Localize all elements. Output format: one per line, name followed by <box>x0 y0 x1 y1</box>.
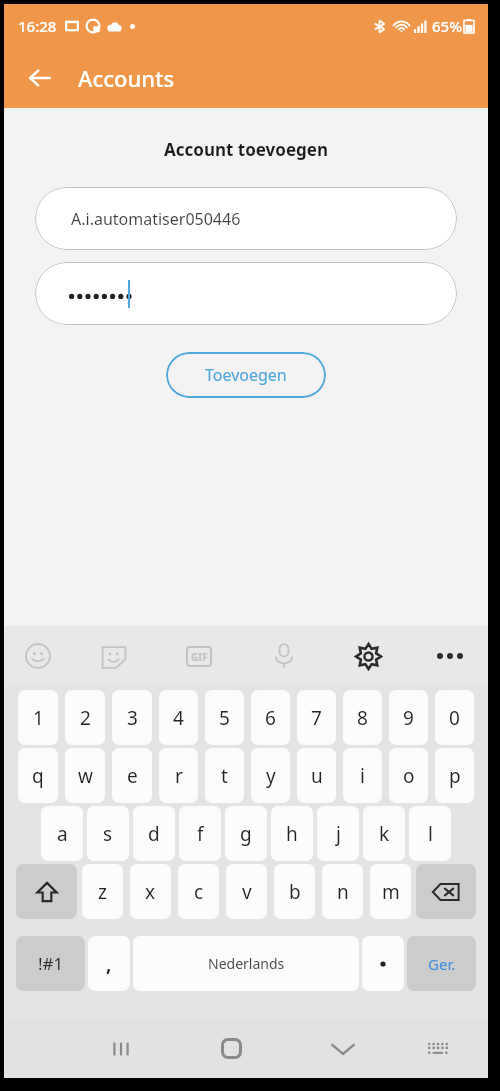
button[interactable]: A.i.automatiser050446 <box>35 187 457 250</box>
button[interactable]: Stickers <box>71 626 156 686</box>
button[interactable]: l <box>409 806 451 861</box>
staticText: w <box>78 763 93 789</box>
button[interactable] <box>362 936 404 991</box>
staticText: Ger. <box>428 954 456 974</box>
button[interactable]: c <box>178 864 219 919</box>
button[interactable]: Recent apps <box>65 1019 176 1078</box>
staticText: 65% <box>432 16 462 36</box>
button[interactable]: v <box>226 864 267 919</box>
button[interactable]: 3 <box>112 690 152 745</box>
button[interactable]: w <box>65 748 105 803</box>
button[interactable]: , <box>88 936 130 991</box>
staticText: 0 <box>449 705 460 731</box>
button[interactable]: 8 <box>343 690 382 745</box>
staticText: j <box>336 821 341 847</box>
button[interactable]: u <box>297 748 336 803</box>
staticText: 8 <box>357 705 368 731</box>
button[interactable]: 6 <box>251 690 290 745</box>
button[interactable]: Hide keyboard <box>287 1019 398 1078</box>
staticText: n <box>337 879 349 905</box>
staticText: h <box>286 821 298 847</box>
button[interactable]: m <box>370 864 411 919</box>
staticText: q <box>32 763 44 789</box>
staticText: y <box>266 763 276 789</box>
staticText: c <box>194 879 204 905</box>
staticText: 7 <box>311 705 322 731</box>
button[interactable]: 1 <box>18 690 58 745</box>
button[interactable]: Nederlands <box>133 936 359 991</box>
button[interactable]: GIF <box>156 626 241 686</box>
staticText: 6 <box>265 705 276 731</box>
button[interactable]: x <box>130 864 171 919</box>
button[interactable]: f <box>179 806 221 861</box>
staticText: t <box>221 763 228 789</box>
staticText: k <box>379 821 390 847</box>
button[interactable]: Backspace <box>416 864 476 919</box>
staticText: , <box>106 951 112 977</box>
staticText: x <box>145 879 156 905</box>
staticText: a <box>57 821 68 847</box>
button[interactable]: 2 <box>65 690 105 745</box>
button[interactable]: Home <box>176 1019 287 1078</box>
staticText: p <box>449 763 461 789</box>
button[interactable]: a <box>41 806 83 861</box>
button[interactable]: k <box>363 806 405 861</box>
button[interactable]: Voice input <box>241 626 326 686</box>
staticText: GIF <box>191 650 208 664</box>
staticText: Nederlands <box>208 954 285 973</box>
button[interactable]: Emoji <box>4 626 71 686</box>
button[interactable]: Toevoegen <box>166 352 326 398</box>
button[interactable]: r <box>159 748 198 803</box>
button[interactable]: More options <box>411 626 488 686</box>
staticText: i <box>360 763 365 789</box>
staticText: g <box>240 821 252 847</box>
staticText: Account toevoegen <box>4 138 488 161</box>
button[interactable] <box>35 262 457 325</box>
button[interactable]: i <box>343 748 382 803</box>
staticText: Accounts <box>78 63 175 93</box>
button[interactable]: t <box>205 748 244 803</box>
button[interactable]: j <box>317 806 359 861</box>
button[interactable]: b <box>274 864 315 919</box>
button[interactable]: s <box>87 806 129 861</box>
staticText: 5 <box>219 705 230 731</box>
staticText: f <box>197 821 204 847</box>
staticText: s <box>103 821 113 847</box>
staticText: 4 <box>173 705 184 731</box>
staticText: !#1 <box>38 952 64 975</box>
button[interactable]: p <box>435 748 474 803</box>
staticText: d <box>148 821 160 847</box>
staticText: 2 <box>80 705 91 731</box>
button[interactable]: Ger. <box>407 936 476 991</box>
button[interactable]: Keyboard settings <box>326 626 411 686</box>
staticText: 16:28 <box>18 16 57 36</box>
button[interactable]: 9 <box>389 690 428 745</box>
staticText: A.i.automatiser050446 <box>71 208 241 230</box>
button[interactable]: !#1 <box>16 936 85 991</box>
button[interactable]: y <box>251 748 290 803</box>
button[interactable]: z <box>82 864 123 919</box>
staticText: 9 <box>403 705 414 731</box>
button[interactable]: h <box>271 806 313 861</box>
staticText: 1 <box>33 705 44 731</box>
button[interactable]: o <box>389 748 428 803</box>
staticText: l <box>428 821 433 847</box>
staticText: r <box>175 763 183 789</box>
staticText: b <box>289 879 301 905</box>
staticText: m <box>382 879 400 905</box>
staticText: z <box>98 879 107 905</box>
staticText: v <box>242 879 252 905</box>
button[interactable]: 5 <box>205 690 244 745</box>
button[interactable]: 0 <box>435 690 474 745</box>
button[interactable]: q <box>18 748 58 803</box>
button[interactable]: d <box>133 806 175 861</box>
staticText: o <box>403 763 415 789</box>
button[interactable]: e <box>112 748 152 803</box>
button[interactable]: 4 <box>159 690 198 745</box>
button[interactable]: g <box>225 806 267 861</box>
button[interactable]: Shift <box>16 864 77 919</box>
button[interactable]: Switch keyboard <box>398 1019 478 1078</box>
button[interactable]: n <box>322 864 363 919</box>
button[interactable]: 7 <box>297 690 336 745</box>
button[interactable]: Back <box>18 56 62 100</box>
